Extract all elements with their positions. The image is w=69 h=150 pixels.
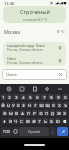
button[interactable]: Ч: [13, 118, 18, 124]
button[interactable]: Ь: [43, 118, 48, 124]
staticText: Ф: [3, 111, 7, 116]
button[interactable]: Ф: [2, 110, 7, 116]
button[interactable]: Р: [32, 110, 37, 116]
button[interactable]: 2: [7, 94, 12, 100]
staticText: К: [17, 103, 20, 108]
button[interactable]: городской округ Омск: [3, 43, 66, 52]
button[interactable]: Э: [62, 110, 67, 116]
button[interactable]: Ъ: [63, 102, 68, 108]
staticText: Ш: [39, 103, 44, 108]
button[interactable]: Ы: [8, 110, 13, 116]
button[interactable]: Омск: [2, 69, 67, 80]
button[interactable]: У: [11, 102, 15, 108]
button[interactable]: Н: [27, 102, 32, 108]
button[interactable]: Show on map: [56, 57, 63, 64]
staticText: 8: [50, 95, 53, 100]
staticText: З: [52, 103, 55, 108]
button[interactable]: 0: [62, 94, 68, 100]
button[interactable]: К: [16, 102, 20, 108]
button[interactable]: Е: [21, 102, 26, 108]
button[interactable]: Щ: [45, 102, 50, 108]
button[interactable]: Б: [49, 118, 54, 124]
staticText: Х: [58, 103, 61, 108]
button[interactable]: Ю: [55, 118, 60, 124]
button[interactable]: Search: [57, 127, 68, 136]
staticText: Русский: [28, 130, 41, 134]
staticText: Г: [34, 103, 37, 108]
staticText: Строченый: [20, 8, 50, 15]
button[interactable]: Омск: [3, 56, 66, 65]
staticText: И: [32, 119, 36, 124]
button[interactable]: Clear text: [57, 71, 64, 78]
staticText: С: [20, 119, 23, 124]
button[interactable]: Т: [37, 118, 42, 124]
staticText: П: [27, 111, 30, 116]
staticText: Ъ: [64, 103, 67, 108]
button[interactable]: More: [56, 85, 64, 93]
button[interactable]: Д: [50, 110, 55, 116]
button[interactable]: Я: [8, 118, 12, 124]
button[interactable]: С: [19, 118, 24, 124]
staticText: .: [52, 129, 54, 134]
button[interactable]: 7: [41, 94, 47, 100]
button[interactable]: Toggle sticker search: [5, 85, 13, 93]
button[interactable]: Ш: [39, 102, 44, 108]
staticText: городской округ Омск: [7, 43, 45, 48]
button[interactable]: 8: [48, 94, 54, 100]
button[interactable]: П: [26, 110, 31, 116]
staticText: ?123: [3, 130, 10, 134]
button[interactable]: З: [51, 102, 56, 108]
button[interactable]: 1: [1, 94, 6, 100]
button[interactable]: 5: [27, 94, 33, 100]
staticText: Д: [51, 111, 54, 116]
staticText: Ы: [9, 111, 13, 116]
button[interactable]: Clipboard: [31, 85, 39, 93]
staticText: 4: [22, 95, 25, 100]
staticText: Москва: [4, 29, 21, 34]
button[interactable]: Л: [44, 110, 49, 116]
staticText: В: [15, 111, 18, 116]
button[interactable]: Москва: [0, 29, 69, 34]
staticText: Ю: [56, 119, 60, 124]
button[interactable]: 9: [55, 94, 61, 100]
button[interactable]: Й: [1, 102, 5, 108]
staticText: Е: [22, 103, 25, 108]
button[interactable]: Shift: [1, 118, 7, 124]
button[interactable]: 6: [34, 94, 40, 100]
staticText: Э: [63, 111, 66, 116]
button[interactable]: Ж: [56, 110, 61, 116]
button[interactable]: GIF: [18, 85, 26, 93]
button[interactable]: Ц: [6, 102, 10, 108]
staticText: У: [12, 103, 15, 108]
staticText: Омск: [6, 72, 17, 78]
staticText: Омск: [7, 56, 16, 61]
button[interactable]: Settings: [43, 85, 51, 93]
staticText: 3: [15, 95, 18, 100]
button[interactable]: ?123: [1, 127, 11, 136]
button[interactable]: Русский: [19, 127, 49, 136]
button[interactable]: .: [50, 127, 56, 136]
button[interactable]: Show on map: [56, 44, 63, 51]
staticText: 7: [43, 95, 46, 100]
staticText: А: [21, 111, 24, 116]
staticText: 5: [29, 95, 32, 100]
button[interactable]: А: [20, 110, 25, 116]
button[interactable]: Emoji: [12, 127, 18, 136]
button[interactable]: Строченый: [3, 6, 66, 23]
button[interactable]: 4: [20, 94, 26, 100]
button[interactable]: Backspace: [61, 118, 68, 124]
staticText: Я: [9, 119, 12, 124]
button[interactable]: 3: [13, 94, 19, 100]
button[interactable]: О: [38, 110, 43, 116]
button[interactable]: Х: [57, 102, 62, 108]
button[interactable]: В: [14, 110, 19, 116]
staticText: 8 °C: [57, 29, 65, 34]
staticText: 2: [8, 95, 11, 100]
button[interactable]: И: [31, 118, 36, 124]
staticText: Й: [1, 103, 5, 108]
button[interactable]: М: [25, 118, 30, 124]
button[interactable]: Г: [33, 102, 38, 108]
staticText: 1: [2, 95, 5, 100]
staticText: 13:40: [4, 1, 15, 6]
staticText: 9: [57, 95, 60, 100]
